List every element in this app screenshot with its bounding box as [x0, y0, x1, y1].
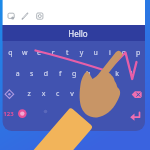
button[interactable]: Keyboard screen [0, 0, 150, 150]
